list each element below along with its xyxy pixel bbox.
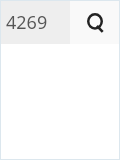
- button[interactable]: Quora home: [70, 1, 119, 44]
- staticText: 4269: [6, 10, 48, 35]
- button[interactable]: 4269: [1, 1, 70, 44]
